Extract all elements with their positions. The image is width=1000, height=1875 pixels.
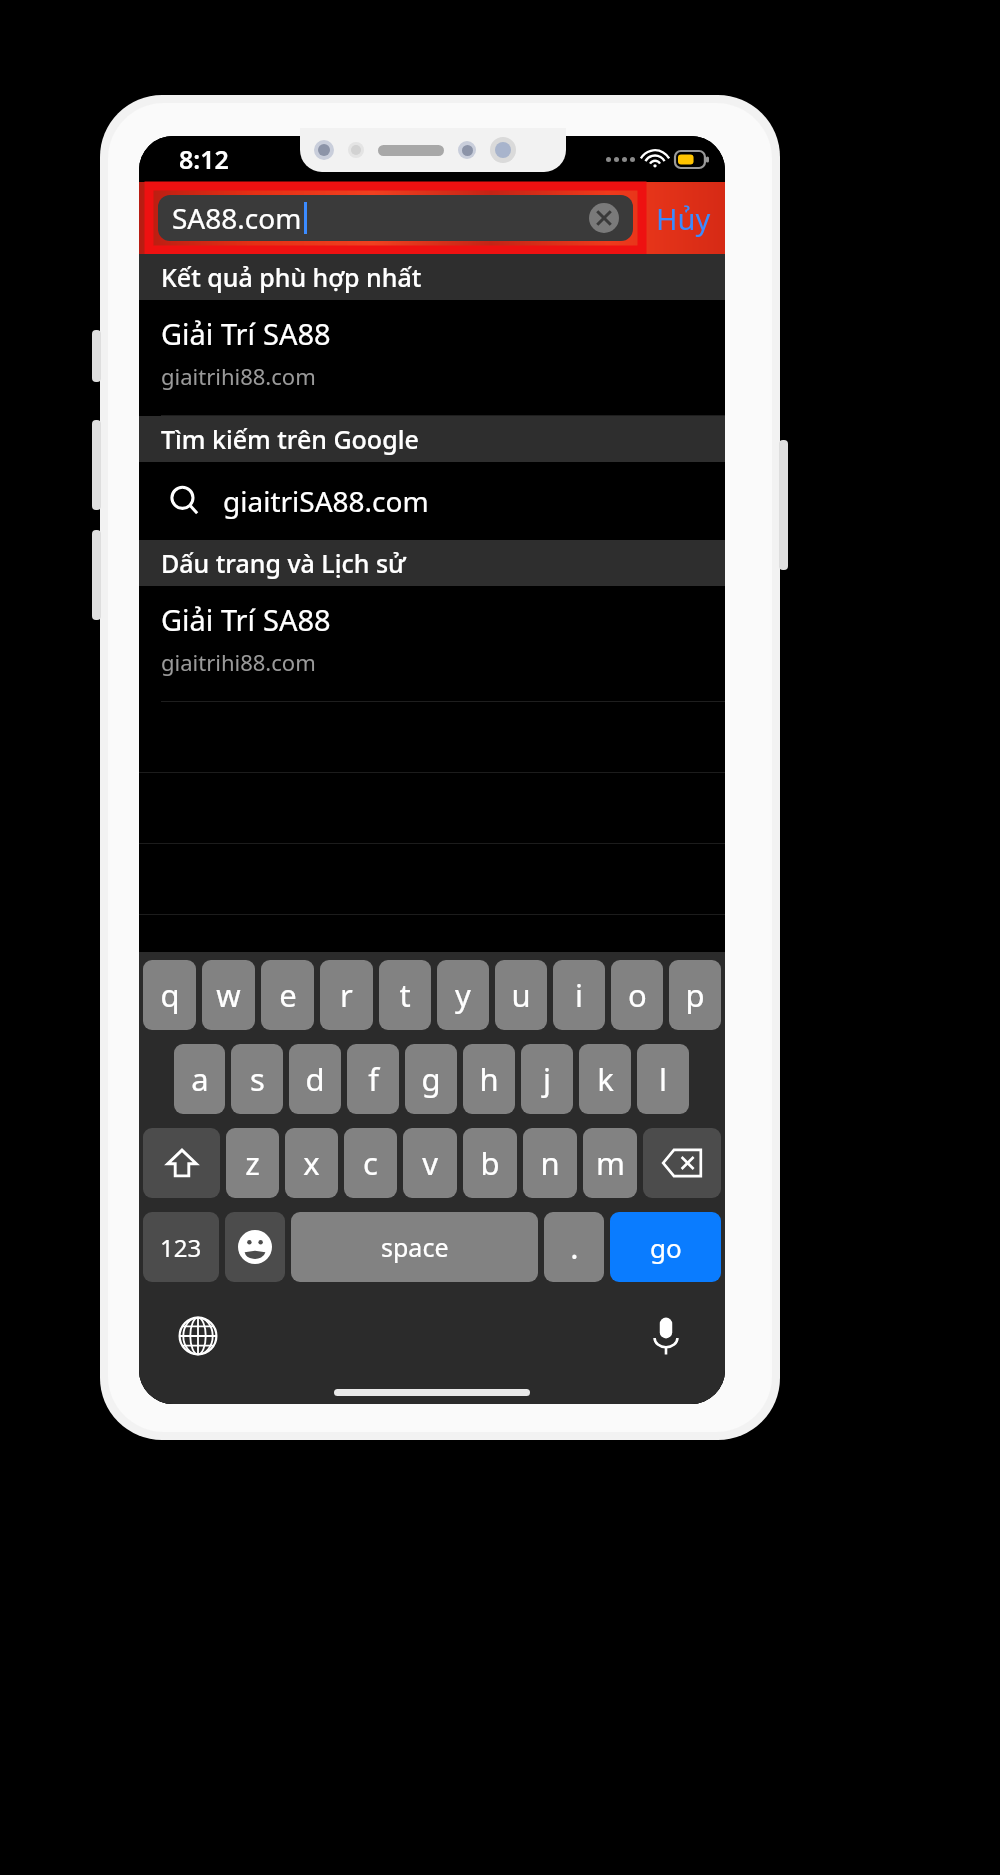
staticText: n xyxy=(540,1142,560,1184)
button[interactable]: w xyxy=(202,960,255,1030)
staticText: SA88 xyxy=(263,600,331,639)
staticText: h xyxy=(479,1058,499,1100)
button[interactable]: Emoji xyxy=(225,1212,285,1282)
button[interactable]: p xyxy=(669,960,721,1030)
button[interactable]: go xyxy=(610,1212,721,1282)
button[interactable]: c xyxy=(344,1128,397,1198)
staticText: 123 xyxy=(160,1231,202,1264)
button[interactable]: a xyxy=(174,1044,225,1114)
button[interactable]: b xyxy=(463,1128,517,1198)
button[interactable]: u xyxy=(495,960,547,1030)
staticText: d xyxy=(305,1058,325,1100)
button[interactable]: i xyxy=(553,960,605,1030)
staticText: w xyxy=(216,974,241,1016)
button[interactable]: Clear text xyxy=(589,203,619,233)
button[interactable]: g xyxy=(405,1044,457,1114)
button[interactable]: SA88.com xyxy=(158,195,633,241)
button[interactable]: n xyxy=(523,1128,577,1198)
staticText: f xyxy=(368,1058,379,1100)
staticText: s xyxy=(250,1058,265,1100)
button[interactable]: Dictation xyxy=(643,1313,689,1359)
button[interactable]: Giải Trí xyxy=(139,300,725,416)
button[interactable]: s xyxy=(231,1044,283,1114)
button[interactable]: Shift xyxy=(143,1128,220,1198)
button[interactable]: o xyxy=(611,960,663,1030)
staticText: . xyxy=(570,1226,579,1268)
button[interactable]: d xyxy=(289,1044,341,1114)
staticText: Giải Trí xyxy=(161,314,263,353)
staticText: giaitrihi88.com xyxy=(161,647,316,677)
staticText: giaitriSA88.com xyxy=(223,482,429,520)
staticText: Giải Trí xyxy=(161,600,263,639)
staticText: g xyxy=(421,1058,441,1100)
staticText: x xyxy=(303,1142,320,1184)
button[interactable]: h xyxy=(463,1044,515,1114)
staticText: SA88.com xyxy=(172,199,302,237)
staticText: 8:12 xyxy=(179,142,229,176)
staticText: v xyxy=(422,1142,438,1184)
button[interactable]: 123 xyxy=(143,1212,219,1282)
staticText: b xyxy=(480,1142,500,1184)
button[interactable]: t xyxy=(379,960,431,1030)
staticText: i xyxy=(575,974,583,1016)
staticText: Kết quả phù hợp nhất xyxy=(161,260,422,294)
staticText: u xyxy=(511,974,531,1016)
button[interactable]: z xyxy=(226,1128,279,1198)
button[interactable]: Giải Trí xyxy=(139,586,725,702)
button[interactable]: Change keyboard xyxy=(175,1313,221,1359)
staticText: SA88 xyxy=(263,314,331,353)
button[interactable]: giaitriSA88.com xyxy=(139,462,725,540)
button[interactable]: k xyxy=(579,1044,631,1114)
button[interactable]: m xyxy=(583,1128,637,1198)
button[interactable]: v xyxy=(403,1128,457,1198)
button[interactable]: q xyxy=(143,960,196,1030)
button[interactable]: . xyxy=(544,1212,604,1282)
button[interactable]: Backspace xyxy=(643,1128,721,1198)
staticText: j xyxy=(543,1058,551,1100)
staticText: a xyxy=(191,1058,209,1100)
button[interactable]: Hủy xyxy=(656,199,711,238)
button[interactable]: y xyxy=(437,960,489,1030)
staticText: m xyxy=(596,1142,625,1184)
button[interactable]: f xyxy=(347,1044,399,1114)
staticText: Tìm kiếm trên Google xyxy=(161,422,419,456)
staticText: go xyxy=(650,1230,682,1265)
staticText: l xyxy=(659,1058,667,1100)
staticText: c xyxy=(363,1142,378,1184)
staticText: z xyxy=(245,1142,260,1184)
staticText: q xyxy=(160,974,180,1016)
staticText: r xyxy=(340,974,353,1016)
staticText: y xyxy=(455,974,471,1016)
button[interactable]: r xyxy=(320,960,373,1030)
staticText: k xyxy=(597,1058,614,1100)
button[interactable]: x xyxy=(285,1128,338,1198)
staticText: o xyxy=(628,974,647,1016)
button[interactable]: e xyxy=(261,960,314,1030)
staticText: t xyxy=(399,974,411,1016)
staticText: space xyxy=(381,1230,449,1264)
staticText: Dấu trang và Lịch sử xyxy=(161,546,406,580)
staticText: e xyxy=(279,974,297,1016)
staticText: p xyxy=(685,974,705,1016)
button[interactable]: j xyxy=(521,1044,573,1114)
staticText: Hủy xyxy=(656,199,711,238)
button[interactable]: l xyxy=(637,1044,689,1114)
button[interactable]: space xyxy=(291,1212,538,1282)
staticText: giaitrihi88.com xyxy=(161,361,316,391)
